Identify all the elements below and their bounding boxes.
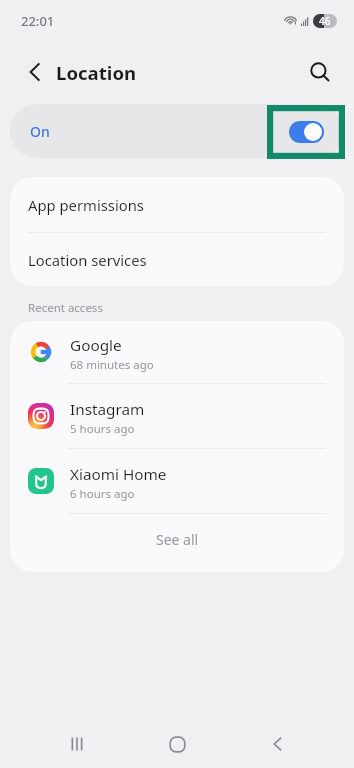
staticText: Location	[56, 60, 137, 85]
staticText: 5 hours ago	[70, 421, 135, 437]
staticText: 68 minutes ago	[70, 357, 154, 373]
button[interactable]: Instagram	[10, 384, 344, 448]
button[interactable]: Xiaomi Home	[10, 449, 344, 513]
staticText: 22:01	[21, 12, 55, 30]
staticText: On	[30, 122, 50, 141]
button[interactable]: Location toggle	[289, 121, 324, 143]
button[interactable]: Back	[18, 55, 52, 89]
button[interactable]: Recents	[53, 720, 101, 768]
button[interactable]: Home	[153, 720, 201, 768]
button[interactable]: Back	[254, 720, 302, 768]
staticText: App permissions	[28, 195, 144, 215]
button[interactable]: On	[10, 104, 344, 158]
button[interactable]: Google	[10, 321, 344, 383]
staticText: See all	[156, 530, 199, 549]
staticText: 6 hours ago	[70, 486, 135, 502]
staticText: Instagram	[70, 399, 145, 420]
button[interactable]: See all	[10, 514, 344, 572]
staticText: Location services	[28, 250, 147, 270]
staticText: 46	[319, 14, 331, 28]
staticText: Google	[70, 335, 122, 356]
staticText: Xiaomi Home	[70, 464, 167, 485]
button[interactable]: Search	[302, 54, 338, 90]
button[interactable]: App permissions	[10, 177, 344, 232]
staticText: Recent access	[28, 300, 103, 316]
button[interactable]: Location services	[10, 233, 344, 286]
